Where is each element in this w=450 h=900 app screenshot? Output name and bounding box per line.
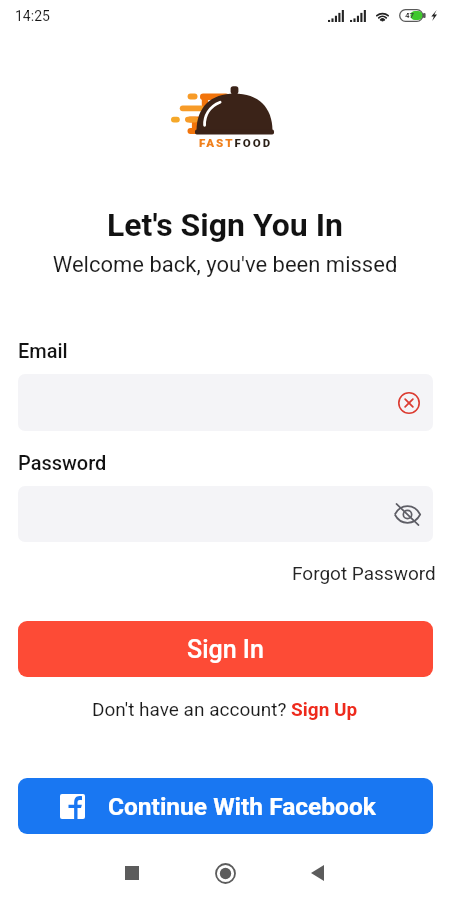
staticText: Forgot Password — [292, 562, 436, 584]
button[interactable]: Home — [204, 852, 246, 894]
button[interactable]: Show password — [18, 486, 433, 542]
staticText: Sign In — [187, 635, 264, 664]
button[interactable]: Don't have an account? Sign Up — [88, 694, 362, 724]
other: Show password — [394, 501, 421, 528]
staticText: Password — [18, 451, 107, 474]
button[interactable]: Forgot Password — [292, 559, 450, 587]
staticText: FASTFOOD — [199, 136, 273, 149]
staticText: Continue With Facebook — [108, 792, 376, 821]
button[interactable]: Sign In — [18, 621, 433, 677]
staticText: Welcome back, you've been missed — [0, 252, 450, 278]
staticText: Let's Sign You In — [0, 206, 450, 244]
staticText: 14:25 — [15, 8, 50, 24]
other: Clear email — [397, 391, 421, 415]
button[interactable]: Back — [296, 852, 338, 894]
button[interactable]: Recents — [111, 852, 153, 894]
staticText: 47 — [405, 11, 415, 20]
staticText: Email — [18, 339, 68, 362]
staticText: Don't have an account? Sign Up — [92, 698, 358, 720]
button[interactable]: Clear email — [18, 374, 433, 431]
button[interactable]: Continue With Facebook — [18, 778, 433, 834]
